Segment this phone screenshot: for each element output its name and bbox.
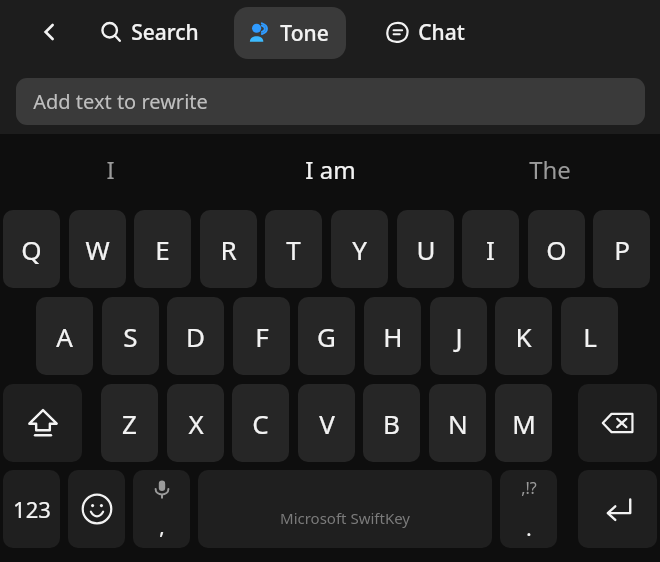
button[interactable]: Emoji: [68, 470, 125, 548]
staticText: I: [106, 153, 115, 186]
staticText: O: [546, 232, 567, 267]
staticText: B: [383, 406, 400, 441]
button[interactable]: Add text to rewrite: [16, 78, 645, 125]
button[interactable]: Search: [100, 8, 199, 56]
staticText: R: [220, 232, 237, 267]
button[interactable]: B: [363, 384, 420, 462]
staticText: E: [155, 232, 170, 267]
button[interactable]: X: [167, 384, 224, 462]
button[interactable]: P: [593, 210, 650, 288]
button[interactable]: V: [298, 384, 355, 462]
button[interactable]: K: [495, 297, 552, 375]
staticText: F: [255, 319, 269, 354]
button[interactable]: Shift: [3, 384, 82, 462]
staticText: Search: [131, 18, 199, 47]
button[interactable]: Backspace: [578, 384, 657, 462]
staticText: G: [317, 319, 336, 354]
button[interactable]: J: [430, 297, 487, 375]
staticText: J: [455, 319, 463, 354]
staticText: ,!?: [521, 477, 537, 499]
button[interactable]: C: [232, 384, 289, 462]
staticText: K: [515, 319, 532, 354]
staticText: 123: [13, 494, 51, 524]
staticText: I: [486, 232, 495, 267]
button[interactable]: Chat: [386, 8, 465, 56]
button[interactable]: The: [440, 134, 660, 204]
staticText: T: [286, 232, 301, 267]
staticText: D: [186, 319, 205, 354]
button[interactable]: D: [167, 297, 224, 375]
button[interactable]: M: [495, 384, 552, 462]
button[interactable]: E: [134, 210, 191, 288]
staticText: M: [512, 406, 536, 441]
staticText: Y: [352, 232, 367, 267]
button[interactable]: Enter: [578, 470, 657, 548]
staticText: W: [85, 232, 110, 267]
staticText: H: [383, 319, 403, 354]
staticText: The: [529, 153, 571, 186]
button[interactable]: F: [233, 297, 290, 375]
button[interactable]: Space: [198, 470, 492, 548]
button[interactable]: A: [36, 297, 93, 375]
staticText: S: [123, 319, 138, 354]
button[interactable]: S: [102, 297, 159, 375]
button[interactable]: I am: [220, 134, 440, 204]
button[interactable]: L: [561, 297, 618, 375]
button[interactable]: Back: [28, 10, 72, 54]
staticText: Z: [122, 406, 137, 441]
staticText: L: [583, 319, 597, 354]
button[interactable]: Tone: [247, 7, 329, 59]
button[interactable]: U: [397, 210, 454, 288]
staticText: U: [416, 232, 436, 267]
button[interactable]: I: [0, 134, 220, 204]
button[interactable]: R: [200, 210, 257, 288]
staticText: C: [252, 406, 269, 441]
staticText: Chat: [418, 18, 465, 47]
button[interactable]: H: [364, 297, 421, 375]
staticText: V: [319, 406, 335, 441]
staticText: Microsoft SwiftKey: [280, 508, 410, 528]
button[interactable]: O: [528, 210, 585, 288]
button[interactable]: N: [429, 384, 486, 462]
staticText: Add text to rewrite: [33, 88, 208, 115]
staticText: Tone: [280, 19, 329, 48]
button[interactable]: Voice input: [133, 470, 190, 548]
staticText: N: [448, 406, 468, 441]
button[interactable]: Y: [331, 210, 388, 288]
button[interactable]: I: [462, 210, 519, 288]
staticText: Q: [21, 232, 42, 267]
staticText: X: [188, 406, 204, 441]
button[interactable]: Q: [3, 210, 60, 288]
staticText: A: [56, 319, 73, 354]
staticText: I am: [305, 153, 356, 186]
staticText: P: [614, 232, 630, 267]
button[interactable]: G: [298, 297, 355, 375]
button[interactable]: Numbers: [3, 470, 60, 548]
staticText: .: [526, 515, 532, 542]
button[interactable]: W: [69, 210, 126, 288]
button[interactable]: T: [265, 210, 322, 288]
button[interactable]: Z: [101, 384, 158, 462]
button[interactable]: Punctuation: [500, 470, 557, 548]
staticText: ,: [159, 513, 165, 540]
